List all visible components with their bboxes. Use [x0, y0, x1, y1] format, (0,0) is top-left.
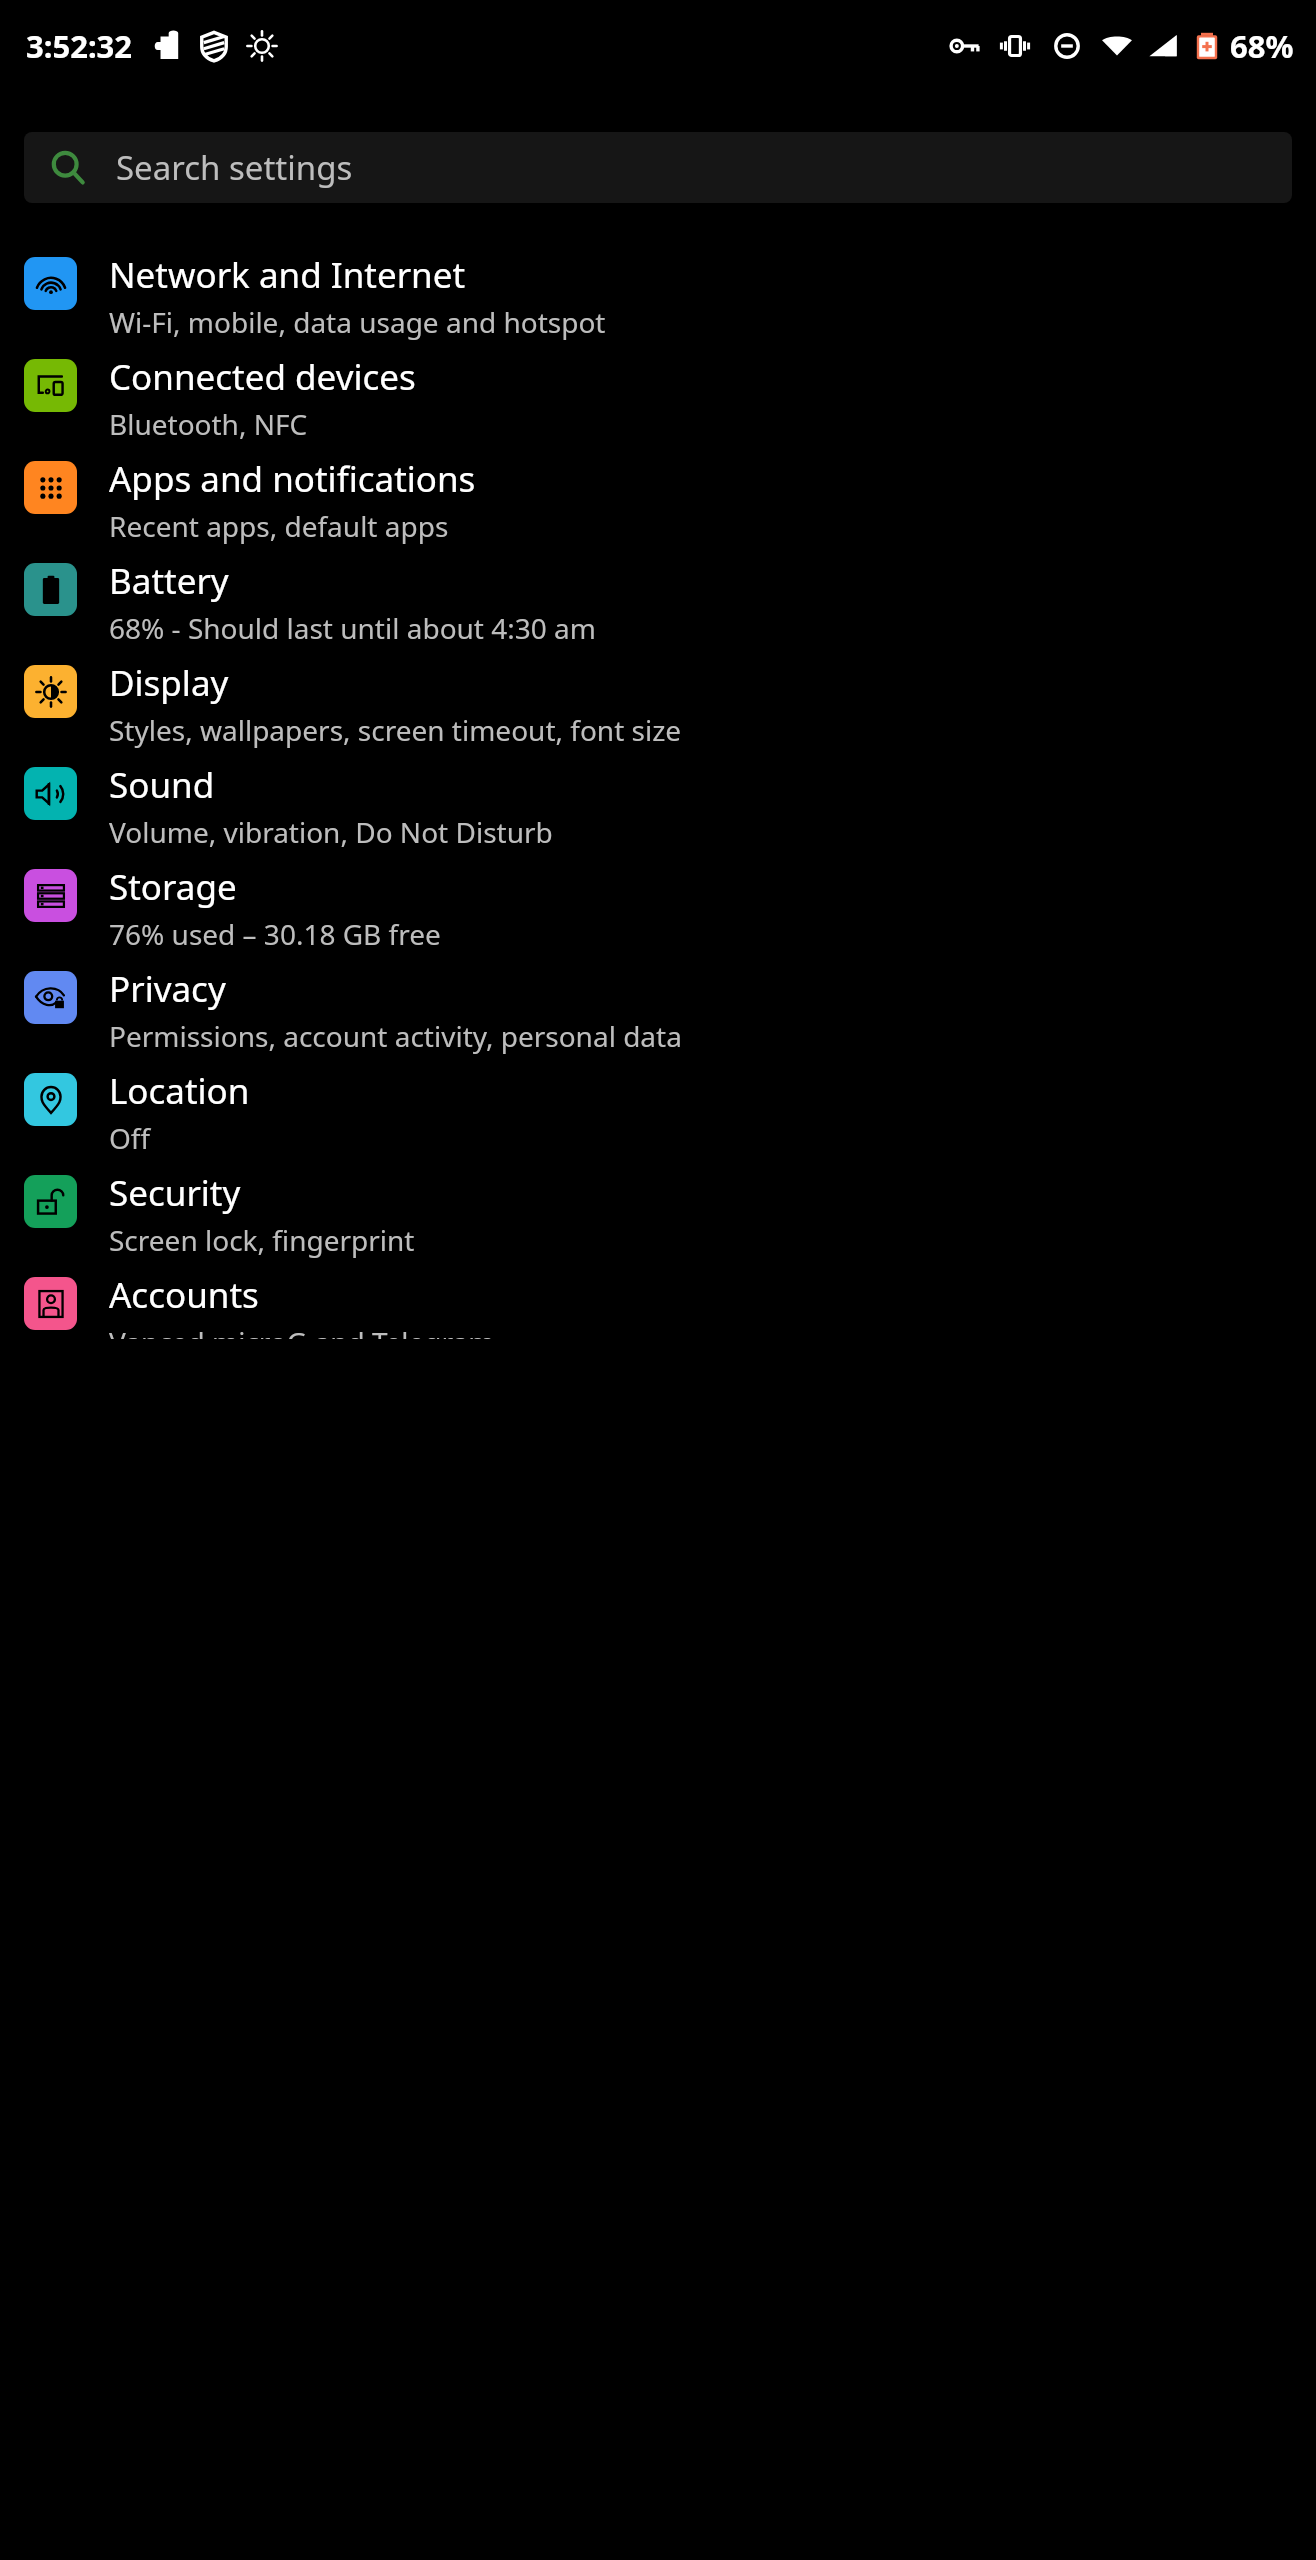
staticText: Bluetooth, NFC [109, 405, 308, 443]
button[interactable]: Display [0, 655, 1316, 757]
button[interactable]: Search settings [24, 132, 1292, 203]
button[interactable]: Connected devices [0, 349, 1316, 451]
staticText: Connected devices [109, 353, 416, 401]
staticText: Vanced microG and Telegram [109, 1323, 495, 1339]
staticText: Accounts [109, 1271, 259, 1319]
button[interactable]: Sound [0, 757, 1316, 859]
staticText: Off [109, 1119, 151, 1157]
button[interactable]: Accounts [0, 1267, 1316, 1339]
button[interactable]: Battery [0, 553, 1316, 655]
staticText: Privacy [109, 965, 226, 1013]
staticText: Recent apps, default apps [109, 507, 449, 545]
staticText: Display [109, 659, 229, 707]
staticText: Wi-Fi, mobile, data usage and hotspot [109, 303, 606, 341]
button[interactable]: Storage [0, 859, 1316, 961]
button[interactable]: Network and Internet [0, 247, 1316, 349]
staticText: Location [109, 1067, 250, 1115]
staticText: Security [109, 1169, 241, 1217]
button[interactable]: Security [0, 1165, 1316, 1267]
staticText: 68% - Should last until about 4:30 am [109, 609, 596, 647]
staticText: Search settings [116, 145, 353, 190]
staticText: Sound [109, 761, 215, 809]
staticText: Volume, vibration, Do Not Disturb [109, 813, 553, 851]
staticText: Screen lock, fingerprint [109, 1221, 415, 1259]
staticText: Network and Internet [109, 251, 466, 299]
staticText: 76% used – 30.18 GB free [109, 915, 441, 953]
staticText: Battery [109, 557, 229, 605]
staticText: Styles, wallpapers, screen timeout, font… [109, 711, 682, 749]
staticText: Apps and notifications [109, 455, 476, 503]
staticText: 3:52:32 [26, 25, 133, 67]
button[interactable]: Apps and notifications [0, 451, 1316, 553]
staticText: Storage [109, 863, 237, 911]
staticText: Permissions, account activity, personal … [109, 1017, 682, 1055]
button[interactable]: Privacy [0, 961, 1316, 1063]
staticText: 68% [1230, 25, 1294, 67]
button[interactable]: Location [0, 1063, 1316, 1165]
